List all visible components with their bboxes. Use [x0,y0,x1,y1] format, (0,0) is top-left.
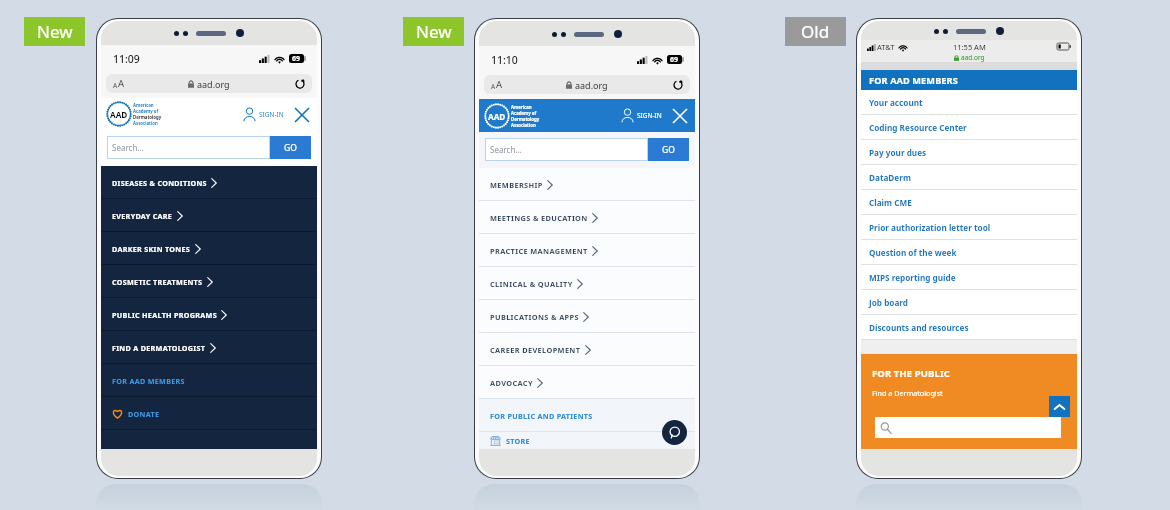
button[interactable]: DataDerm [861,165,1077,190]
staticText: SIGN-IN [637,111,662,120]
button[interactable]: Chat [662,420,687,445]
staticText: FOR PUBLIC AND PATIENTS [490,411,593,421]
button[interactable]: SIGN-IN [618,106,664,125]
staticText: DISEASES & CONDITIONS [112,178,207,188]
staticText: MEETINGS & EDUCATION [490,213,588,223]
button[interactable]: Prior authorization letter tool [861,215,1077,240]
button[interactable]: DARKER SKIN TONES [101,232,317,265]
staticText: Academy of [133,108,159,114]
button[interactable]: DONATE [101,397,317,430]
staticText: GO [284,142,297,154]
button[interactable]: Pay your dues [861,140,1077,165]
button[interactable]: Close menu [671,107,689,125]
staticText: 69 [292,54,301,63]
staticText: Search... [490,144,522,155]
button[interactable]: GO [270,136,311,159]
button[interactable]: GO [648,138,689,161]
staticText: FIND A DERMATOLOGIST [112,343,206,353]
staticText: MEMBERSHIP [490,180,543,190]
staticText: 11:09 [113,52,140,66]
staticText: aad.org [961,53,985,62]
staticText: CLINICAL & QUALITY [490,279,573,289]
staticText: Find a Dermatologist [872,388,943,398]
staticText: Dermatology [133,114,162,120]
button[interactable]: EVERYDAY CARE [101,199,317,232]
staticText: aad.org [575,79,608,91]
staticText: Association [133,120,158,126]
staticText: Academy of [511,110,537,116]
button[interactable]: COSMETIC TREATMENTS [101,265,317,298]
button[interactable]: FOR AAD MEMBERS [101,364,317,397]
button[interactable]: MEETINGS & EDUCATION [479,201,695,234]
button[interactable]: ADVOCACY [479,366,695,399]
staticText: FOR AAD MEMBERS [112,376,185,386]
staticText: New [37,20,73,43]
button[interactable]: FOR PUBLIC AND PATIENTS [479,399,695,432]
staticText: PUBLICATIONS & APPS [490,312,579,322]
staticText: A [496,78,503,91]
staticText: PRACTICE MANAGEMENT [490,246,588,256]
staticText: AAD [488,111,506,122]
staticText: aad.org [197,78,230,90]
button[interactable]: PUBLICATIONS & APPS [479,300,695,333]
staticText: DONATE [128,409,160,419]
staticText: STORE [506,436,530,446]
staticText: Coding Resource Center [869,122,967,133]
staticText: American [133,102,154,108]
staticText: EVERYDAY CARE [112,211,173,221]
staticText: Discounts and resources [869,322,969,333]
button[interactable]: CLINICAL & QUALITY [479,267,695,300]
staticText: COSMETIC TREATMENTS [112,277,203,287]
staticText: New [416,20,452,43]
staticText: AT&T [877,42,895,52]
staticText: AAD [110,109,128,120]
button[interactable]: Claim CME [861,190,1077,215]
staticText: MIPS reporting guide [869,272,956,283]
staticText: Your account [869,97,923,108]
button[interactable]: PRACTICE MANAGEMENT [479,234,695,267]
button[interactable]: MIPS reporting guide [861,265,1077,290]
staticText: Association [511,122,536,128]
button[interactable]: Close menu [293,106,311,124]
staticText: Job board [869,297,908,308]
staticText: Old [801,20,830,43]
staticText: 69 [670,55,679,64]
button[interactable]: DISEASES & CONDITIONS [101,166,317,199]
button[interactable]: Question of the week [861,240,1077,265]
staticText: CAREER DEVELOPMENT [490,345,581,355]
staticText: Pay your dues [869,147,927,158]
staticText: 11:55 AM [953,42,986,52]
staticText: DARKER SKIN TONES [112,244,191,254]
staticText: Dermatology [511,116,540,122]
button[interactable] [875,417,1061,438]
button[interactable]: Scroll to top [1049,396,1070,417]
staticText: A [118,77,125,90]
staticText: FOR AAD MEMBERS [869,74,958,87]
button[interactable]: FIND A DERMATOLOGIST [101,331,317,364]
button[interactable]: Job board [861,290,1077,315]
button[interactable]: CAREER DEVELOPMENT [479,333,695,366]
staticText: DataDerm [869,172,911,183]
button[interactable]: MEMBERSHIP [479,168,695,201]
staticText: Search... [112,142,144,153]
staticText: A [113,81,118,90]
staticText: 11:10 [491,53,518,67]
staticText: GO [662,144,675,156]
button[interactable]: PUBLIC HEALTH PROGRAMS [101,298,317,331]
button[interactable]: Coding Resource Center [861,115,1077,140]
staticText: Prior authorization letter tool [869,222,991,233]
staticText: SIGN-IN [259,110,284,119]
button[interactable]: FOR AAD MEMBERS [861,70,1077,90]
staticText: PUBLIC HEALTH PROGRAMS [112,310,217,320]
staticText: ADVOCACY [490,378,533,388]
staticText: FOR THE PUBLIC [872,367,950,380]
button[interactable]: Discounts and resources [861,315,1077,340]
staticText: Claim CME [869,197,912,208]
staticText: American [511,104,532,110]
staticText: Question of the week [869,247,957,258]
button[interactable]: SIGN-IN [240,105,286,124]
button[interactable]: Your account [861,90,1077,115]
button[interactable]: STORE [479,432,695,449]
staticText: A [491,82,496,91]
